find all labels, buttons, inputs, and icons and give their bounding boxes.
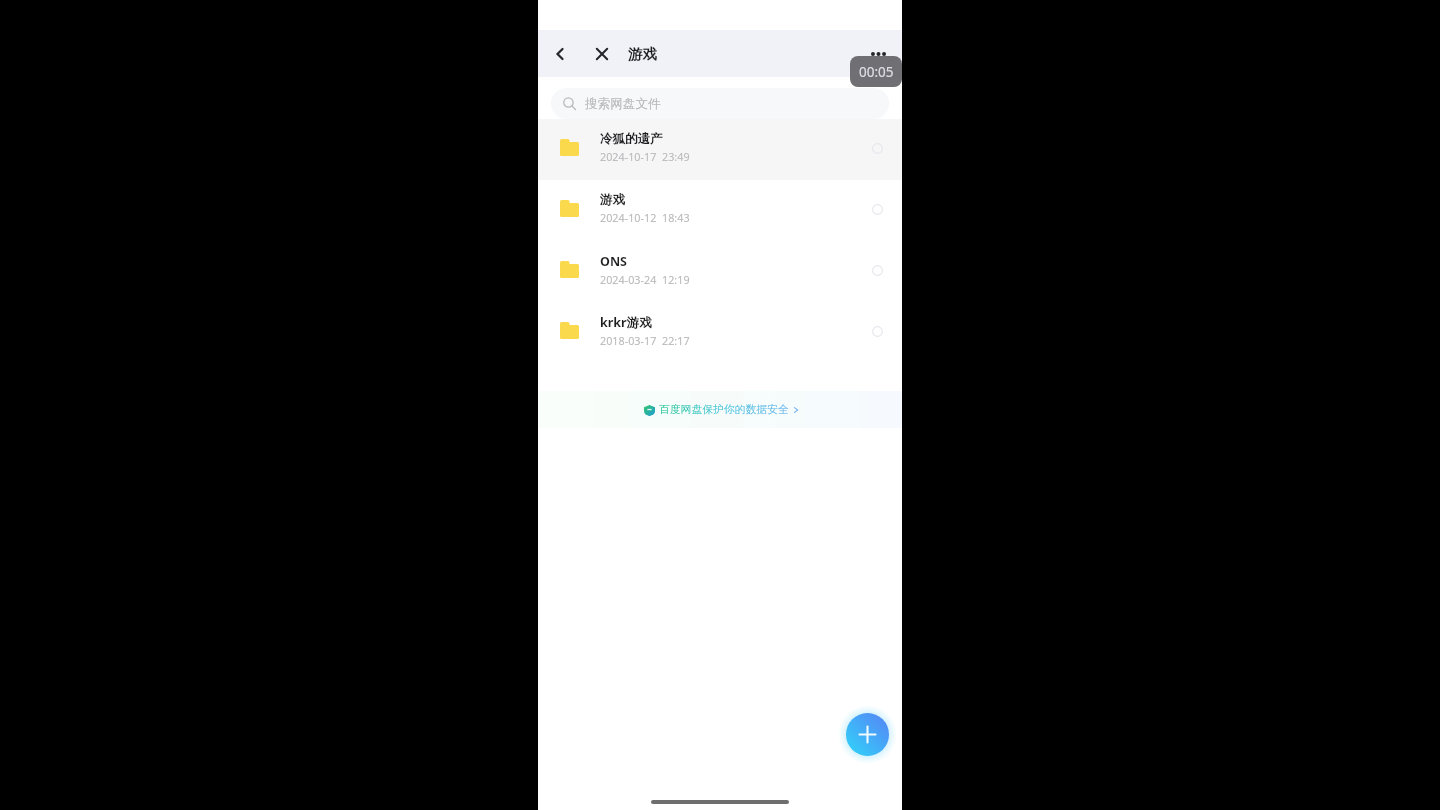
- button[interactable]: 百度网盘保护你的数据安全: [538, 391, 902, 428]
- staticText: 冷狐的遗产: [600, 131, 663, 147]
- button[interactable]: 搜索网盘文件: [551, 88, 889, 119]
- button[interactable]: ONS: [538, 241, 902, 302]
- button[interactable]: Back: [547, 41, 573, 67]
- button[interactable]: Select item: [862, 194, 892, 224]
- staticText: 2024-10-17 23:49: [600, 149, 690, 164]
- staticText: 2024-03-24 12:19: [600, 272, 690, 287]
- staticText: 游戏: [600, 192, 625, 208]
- staticText: 百度网盘保护你的数据安全: [659, 403, 789, 417]
- button[interactable]: krkr游戏: [538, 302, 902, 363]
- button[interactable]: 游戏: [538, 180, 902, 241]
- staticText: ONS: [600, 253, 627, 270]
- staticText: krkr游戏: [600, 314, 652, 331]
- staticText: 2024-10-12 18:43: [600, 210, 690, 225]
- staticText: 2018-03-17 22:17: [600, 333, 690, 348]
- button[interactable]: 冷狐的遗产: [538, 119, 902, 180]
- staticText: 搜索网盘文件: [585, 96, 661, 112]
- button[interactable]: Select item: [862, 255, 892, 285]
- button[interactable]: More options: [861, 42, 895, 76]
- staticText: 00:05: [859, 63, 894, 81]
- button[interactable]: Close: [589, 41, 615, 67]
- button[interactable]: Select item: [862, 316, 892, 346]
- button[interactable]: Add: [846, 713, 889, 756]
- staticText: 游戏: [628, 45, 657, 63]
